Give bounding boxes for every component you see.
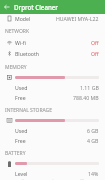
staticText: INTERNAL STORAGE <box>5 107 53 114</box>
button[interactable]: Bluetooth <box>0 48 105 59</box>
staticText: Model <box>15 15 31 22</box>
button[interactable]: Free <box>0 92 105 102</box>
staticText: Bluetooth <box>15 50 40 57</box>
button[interactable]: Level <box>0 168 105 178</box>
staticText: Used <box>15 84 28 91</box>
staticText: Free <box>15 94 26 101</box>
button[interactable]: Free <box>0 135 105 145</box>
button[interactable]: Used <box>0 82 105 92</box>
staticText: Drprot Cleaner <box>14 3 58 11</box>
staticText: 788.40 MB <box>73 94 99 101</box>
staticText: NETWORK <box>5 28 30 35</box>
staticText: 4 GB <box>87 137 99 144</box>
staticText: Free <box>15 137 26 144</box>
button[interactable]: Used <box>0 125 105 135</box>
staticText: 6 GB <box>87 127 99 134</box>
staticText: Used <box>15 127 28 134</box>
button[interactable]: Model <box>0 14 105 23</box>
staticText: Off <box>91 39 99 46</box>
staticText: Level <box>15 170 28 177</box>
staticText: Off <box>91 50 99 57</box>
button[interactable]: Wi-fi <box>0 37 105 48</box>
staticText: 1.11 GB <box>80 84 99 91</box>
staticText: 14% <box>88 170 99 177</box>
staticText: MEMORY <box>5 64 27 71</box>
staticText: HUAWEI MYA-L22 <box>56 15 99 22</box>
staticText: BATTERY <box>5 150 26 157</box>
staticText: Wi-fi <box>15 39 26 46</box>
button[interactable]: Back <box>0 0 14 14</box>
